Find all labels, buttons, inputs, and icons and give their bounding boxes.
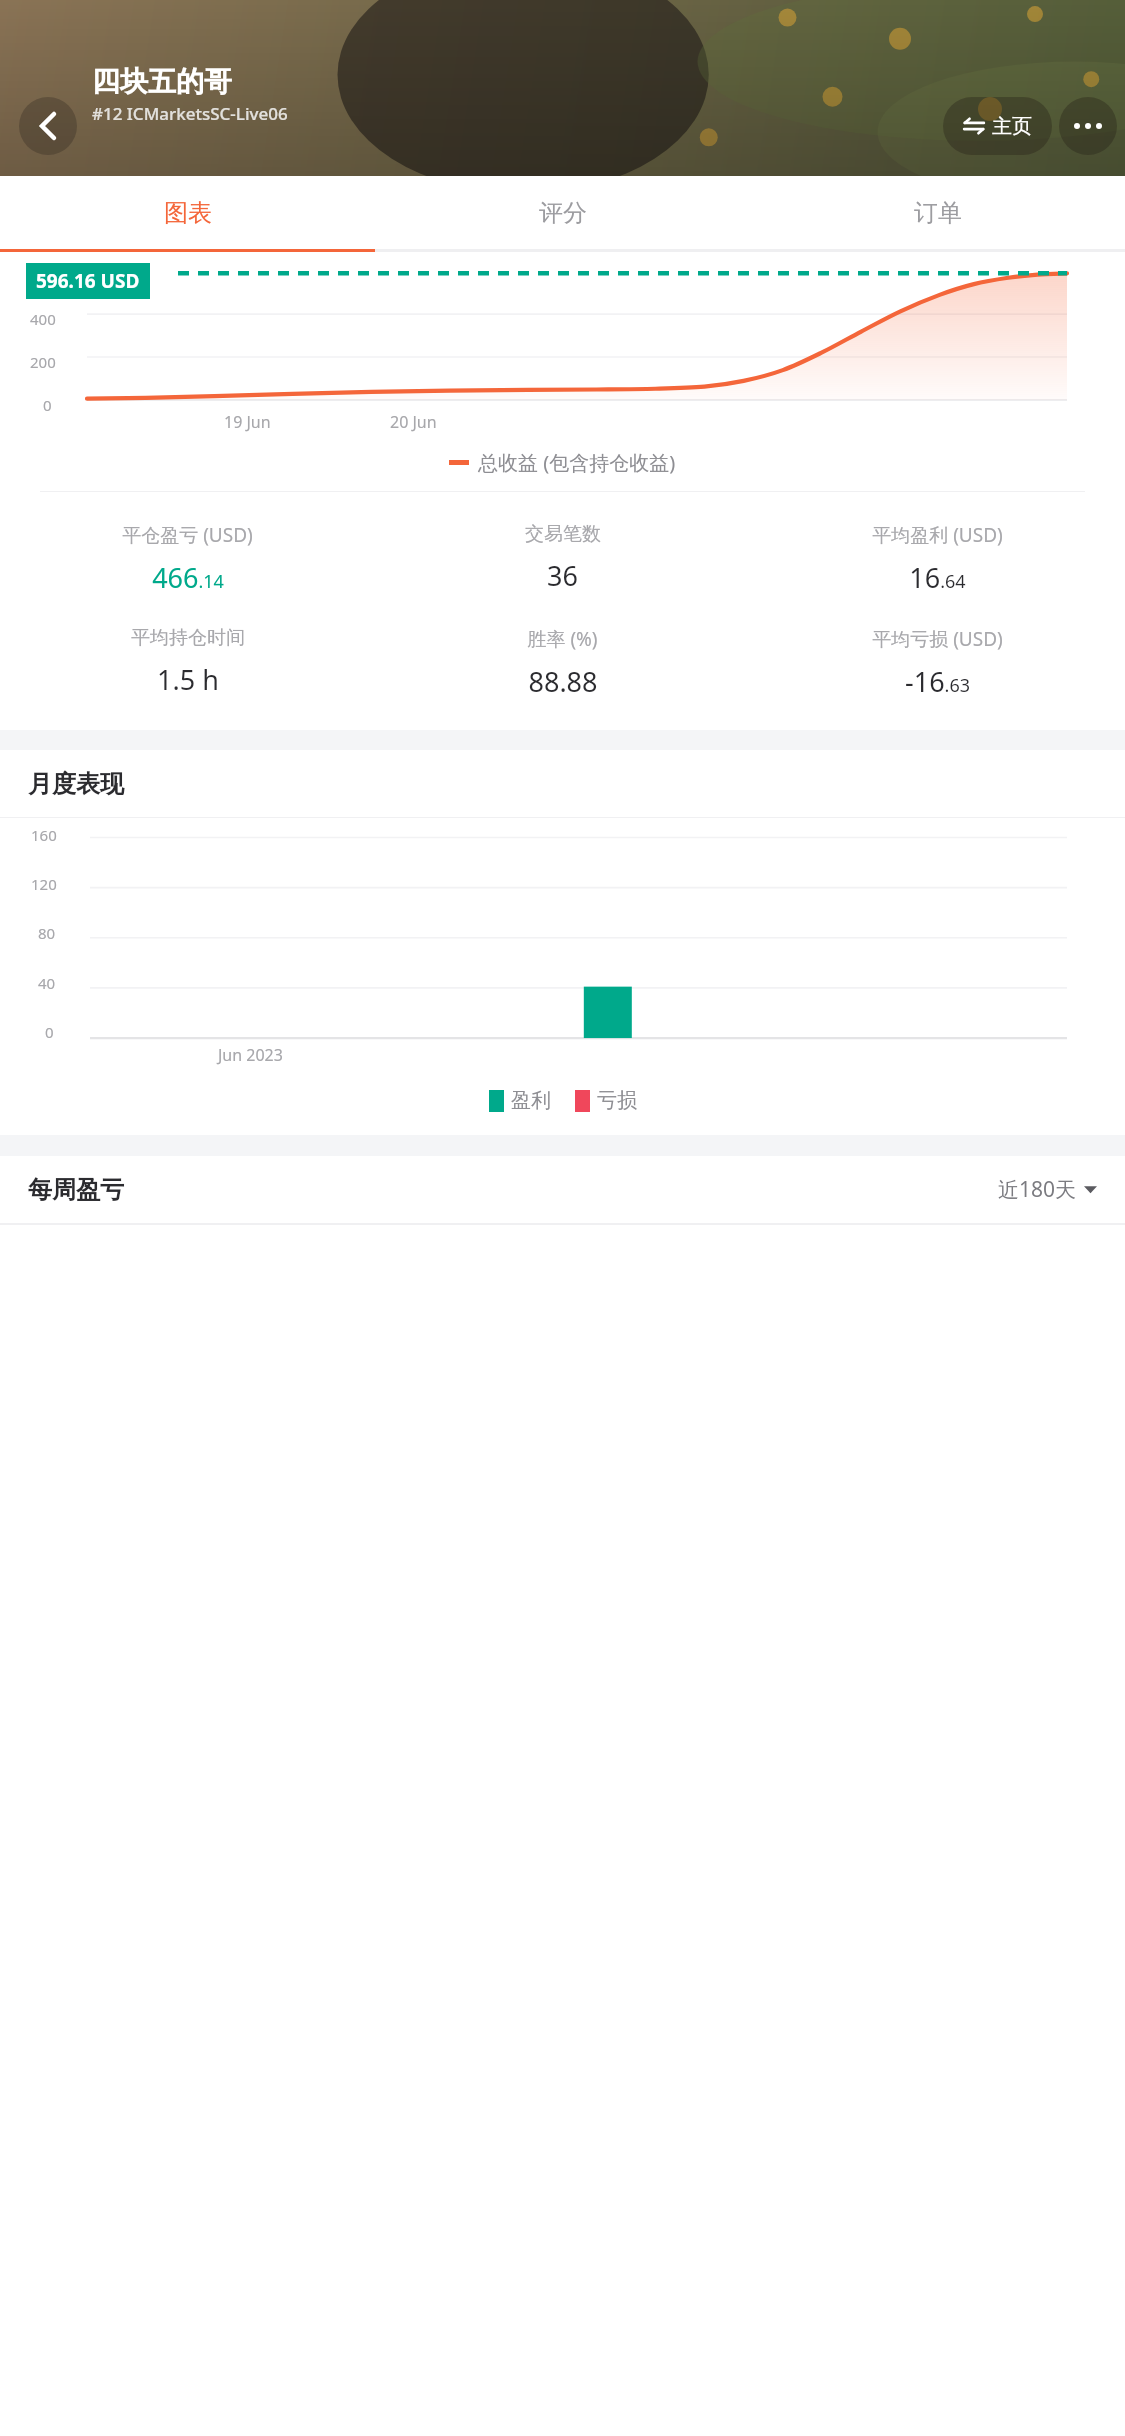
staticText: 总收益 (包含持仓收益) xyxy=(478,449,676,476)
staticText: 120 xyxy=(31,874,57,894)
button[interactable]: 订单 xyxy=(750,176,1125,249)
staticText: 16.64 xyxy=(909,559,966,596)
staticText: Jun 2023 xyxy=(218,1044,283,1066)
staticText: 主页 xyxy=(992,114,1032,139)
staticText: 20 Jun xyxy=(390,411,437,433)
staticText: 40 xyxy=(38,973,56,993)
button[interactable]: 评分 xyxy=(375,176,750,249)
staticText: 88.88 xyxy=(528,663,598,700)
staticText: 平均持仓时间 xyxy=(131,626,245,650)
staticText: 0 xyxy=(43,395,52,415)
button[interactable]: 主页 xyxy=(943,97,1052,155)
staticText: 1.5 h xyxy=(157,661,219,698)
staticText: 平均亏损 (USD) xyxy=(872,626,1003,652)
staticText: 图表 xyxy=(164,198,212,228)
staticText: 0 xyxy=(45,1022,54,1042)
button[interactable]: Back xyxy=(19,97,77,155)
staticText: 评分 xyxy=(539,198,587,228)
staticText: 平仓盈亏 (USD) xyxy=(122,522,253,548)
button[interactable]: 近180天 xyxy=(998,1175,1097,1204)
staticText: 交易笔数 xyxy=(525,522,601,546)
staticText: #12 ICMarketsSC-Live06 xyxy=(92,102,288,125)
staticText: 200 xyxy=(30,352,56,372)
staticText: 订单 xyxy=(914,198,962,228)
staticText: 36 xyxy=(547,557,578,594)
staticText: 四块五的哥 xyxy=(92,64,232,99)
button[interactable]: 图表 xyxy=(0,176,375,249)
staticText: 亏损 xyxy=(597,1088,637,1113)
staticText: 近180天 xyxy=(998,1175,1077,1204)
staticText: 月度表现 xyxy=(28,769,124,799)
staticText: 400 xyxy=(30,309,56,329)
staticText: -16.63 xyxy=(905,663,970,700)
staticText: 胜率 (%) xyxy=(527,626,598,652)
staticText: 80 xyxy=(38,923,56,943)
staticText: 每周盈亏 xyxy=(28,1175,124,1205)
staticText: 盈利 xyxy=(511,1088,551,1113)
staticText: 466.14 xyxy=(152,559,224,596)
staticText: 596.16 USD xyxy=(36,268,140,294)
button[interactable]: More options xyxy=(1059,97,1117,155)
staticText: 19 Jun xyxy=(224,411,271,433)
staticText: 平均盈利 (USD) xyxy=(872,522,1003,548)
staticText: 160 xyxy=(31,825,57,845)
